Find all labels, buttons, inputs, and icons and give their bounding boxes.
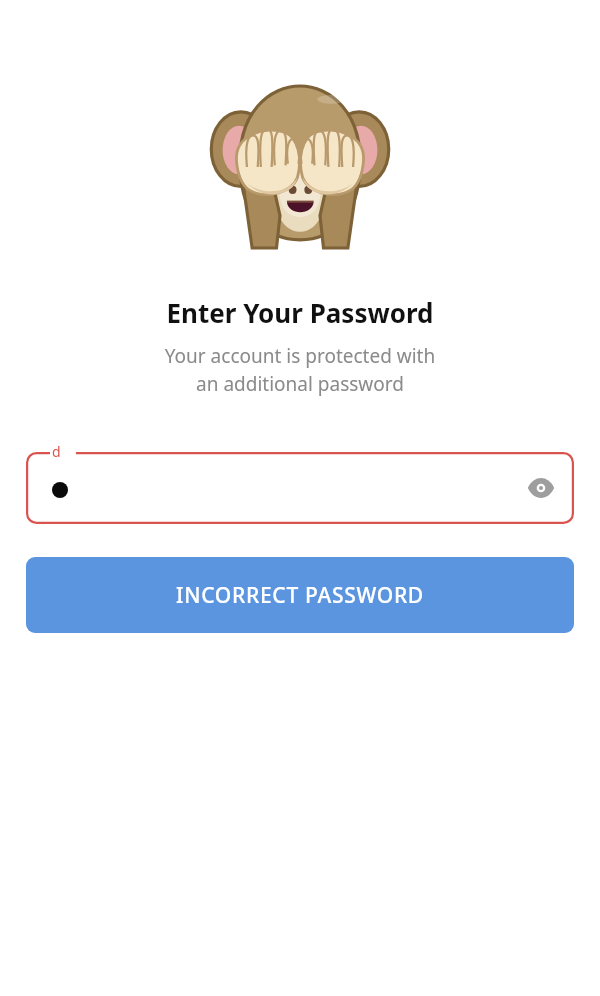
button[interactable]: INCORRECT PASSWORD	[26, 557, 574, 633]
staticText: d	[52, 442, 61, 461]
staticText: INCORRECT PASSWORD	[176, 581, 424, 610]
button[interactable]: Show password	[519, 466, 563, 510]
staticText: Enter Your Password	[0, 295, 600, 330]
staticText: Your account is protected with an additi…	[60, 343, 540, 397]
button[interactable]: d	[26, 452, 574, 524]
